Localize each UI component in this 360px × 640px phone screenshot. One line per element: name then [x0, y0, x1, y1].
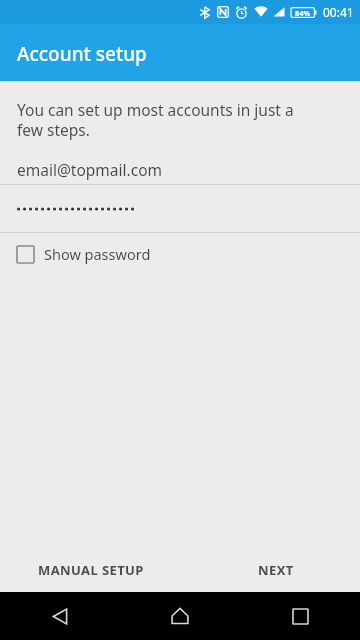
staticText: NEXT	[258, 561, 294, 579]
staticText: email@topmail.com	[17, 159, 163, 180]
staticText: 84%	[295, 8, 311, 18]
staticText: 00:41	[323, 4, 354, 20]
staticText: Account setup	[17, 41, 147, 67]
button[interactable]: Recent apps	[240, 592, 360, 640]
staticText: You can set up most accounts in just a f…	[17, 99, 294, 141]
staticText: Show password	[44, 244, 151, 264]
button[interactable]: Back	[0, 592, 120, 640]
button[interactable]: NEXT	[244, 551, 308, 589]
button[interactable]	[0, 185, 360, 232]
button[interactable]: Show password	[0, 233, 360, 275]
button[interactable]: MANUAL SETUP	[24, 551, 158, 589]
staticText: MANUAL SETUP	[38, 561, 144, 579]
button[interactable]: email@topmail.com	[0, 155, 360, 184]
button[interactable]: Home	[120, 592, 240, 640]
